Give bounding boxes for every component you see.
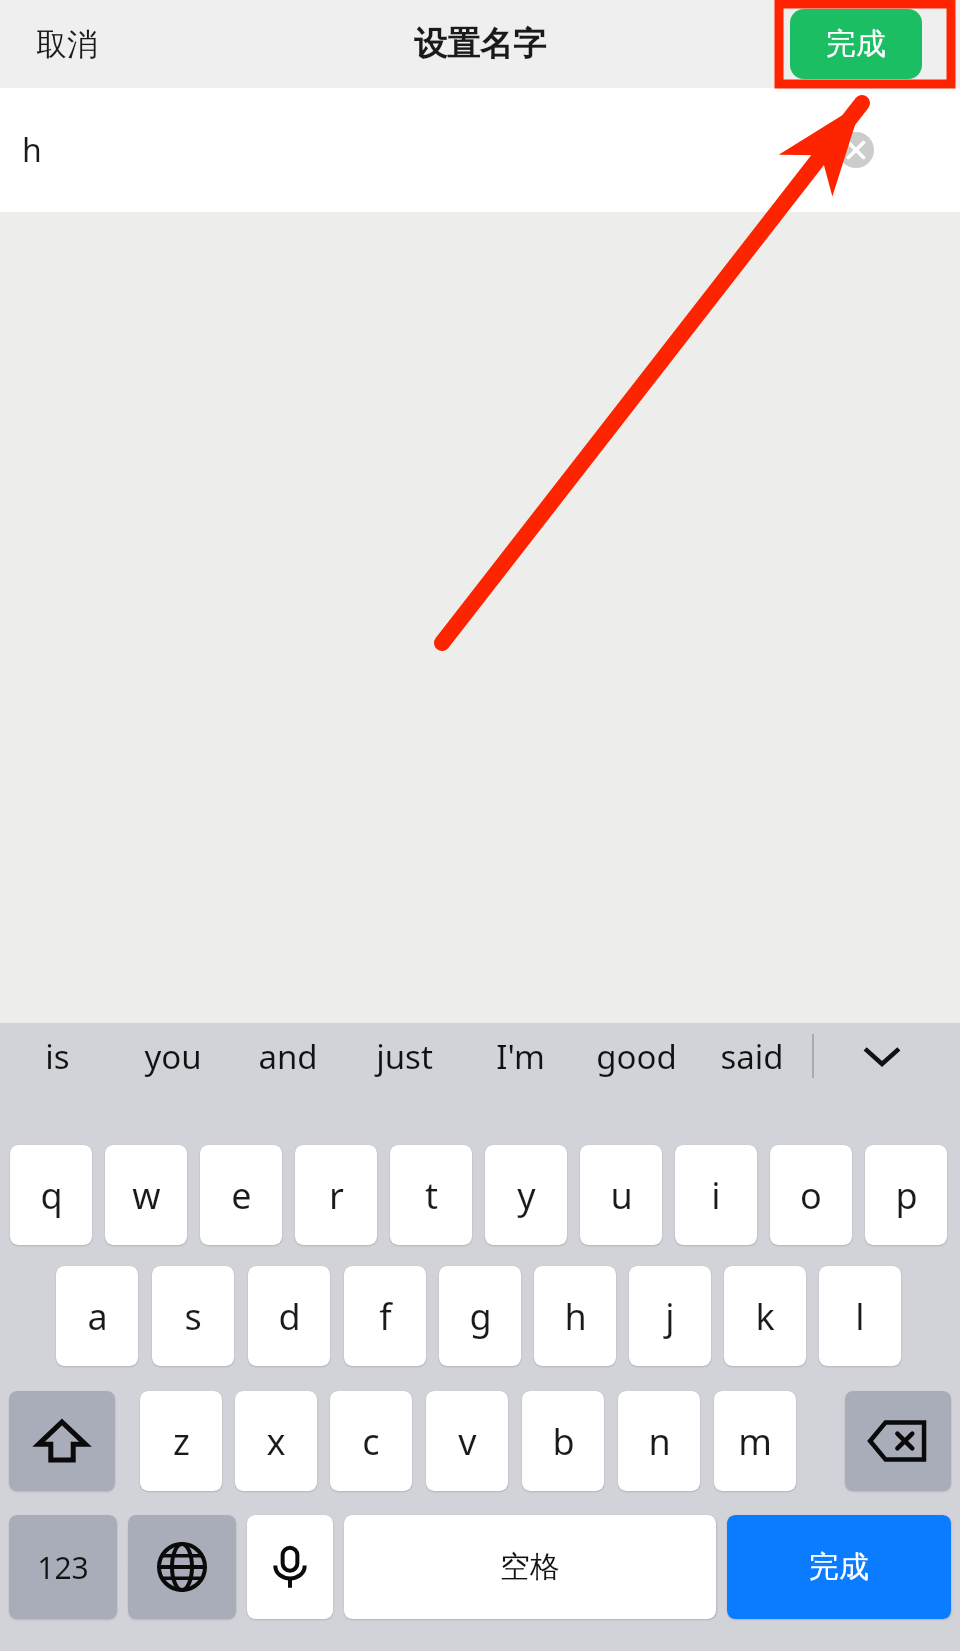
staticText: said bbox=[720, 1034, 784, 1079]
button[interactable]: q bbox=[10, 1145, 92, 1245]
button[interactable]: i bbox=[675, 1145, 757, 1245]
staticText: e bbox=[231, 1171, 252, 1220]
staticText: b bbox=[552, 1417, 575, 1466]
button[interactable]: 123 bbox=[9, 1515, 117, 1619]
staticText: l bbox=[855, 1292, 865, 1341]
button[interactable]: r bbox=[295, 1145, 377, 1245]
staticText: p bbox=[895, 1171, 918, 1220]
staticText: v bbox=[458, 1417, 477, 1466]
button[interactable]: w bbox=[105, 1145, 187, 1245]
staticText: i bbox=[711, 1171, 721, 1220]
staticText: s bbox=[184, 1292, 202, 1341]
staticText: o bbox=[800, 1171, 822, 1220]
staticText: a bbox=[87, 1292, 108, 1341]
button[interactable]: o bbox=[770, 1145, 852, 1245]
button[interactable]: Voice input bbox=[247, 1515, 333, 1619]
button[interactable]: 空格 bbox=[344, 1515, 716, 1619]
button[interactable]: s bbox=[152, 1266, 234, 1366]
button[interactable]: just bbox=[346, 1023, 462, 1089]
staticText: and bbox=[258, 1034, 318, 1079]
button[interactable]: g bbox=[439, 1266, 521, 1366]
button[interactable]: and bbox=[230, 1023, 346, 1089]
staticText: w bbox=[132, 1171, 161, 1220]
button[interactable]: I'm bbox=[462, 1023, 578, 1089]
staticText: h bbox=[564, 1292, 587, 1341]
staticText: c bbox=[362, 1417, 380, 1466]
button[interactable]: h bbox=[534, 1266, 616, 1366]
staticText: q bbox=[40, 1171, 63, 1220]
staticText: 完成 bbox=[809, 1548, 869, 1586]
staticText: is bbox=[45, 1034, 70, 1079]
button[interactable]: is bbox=[0, 1023, 115, 1089]
button[interactable]: f bbox=[344, 1266, 426, 1366]
staticText: k bbox=[755, 1292, 775, 1341]
staticText: m bbox=[738, 1417, 772, 1466]
staticText: j bbox=[665, 1292, 675, 1341]
button[interactable]: you bbox=[115, 1023, 230, 1089]
button[interactable]: e bbox=[200, 1145, 282, 1245]
staticText: 空格 bbox=[500, 1548, 560, 1586]
button[interactable]: a bbox=[56, 1266, 138, 1366]
staticText: 设置名字 bbox=[414, 23, 546, 65]
button[interactable]: Shift bbox=[9, 1391, 115, 1491]
button[interactable]: Clear text bbox=[838, 132, 874, 168]
staticText: y bbox=[517, 1171, 536, 1220]
staticText: good bbox=[596, 1034, 677, 1079]
button[interactable]: j bbox=[629, 1266, 711, 1366]
staticText: just bbox=[376, 1034, 433, 1079]
staticText: f bbox=[379, 1292, 392, 1341]
staticText: r bbox=[329, 1171, 344, 1220]
button[interactable]: c bbox=[330, 1391, 412, 1491]
button[interactable]: x bbox=[235, 1391, 317, 1491]
staticText: t bbox=[425, 1171, 438, 1220]
button[interactable]: l bbox=[819, 1266, 901, 1366]
button[interactable]: k bbox=[724, 1266, 806, 1366]
staticText: 123 bbox=[37, 1547, 89, 1588]
staticText: h bbox=[22, 128, 42, 172]
staticText: d bbox=[278, 1292, 301, 1341]
staticText: z bbox=[173, 1417, 190, 1466]
staticText: 取消 bbox=[36, 25, 98, 64]
button[interactable]: u bbox=[580, 1145, 662, 1245]
button[interactable]: 完成 bbox=[790, 9, 922, 79]
button[interactable]: v bbox=[426, 1391, 508, 1491]
button[interactable]: 取消 bbox=[20, 17, 114, 72]
staticText: I'm bbox=[496, 1034, 545, 1079]
staticText: you bbox=[144, 1034, 202, 1079]
button[interactable]: n bbox=[618, 1391, 700, 1491]
button[interactable]: y bbox=[485, 1145, 567, 1245]
button[interactable]: d bbox=[248, 1266, 330, 1366]
button[interactable]: p bbox=[865, 1145, 947, 1245]
button[interactable]: said bbox=[694, 1023, 810, 1089]
staticText: 完成 bbox=[826, 25, 886, 63]
staticText: x bbox=[266, 1417, 286, 1466]
button[interactable]: Change language bbox=[128, 1515, 236, 1619]
button[interactable]: t bbox=[390, 1145, 472, 1245]
button[interactable]: good bbox=[578, 1023, 694, 1089]
staticText: u bbox=[610, 1171, 633, 1220]
button[interactable]: Backspace bbox=[845, 1391, 951, 1491]
staticText: n bbox=[648, 1417, 671, 1466]
button[interactable]: z bbox=[140, 1391, 222, 1491]
staticText: g bbox=[469, 1292, 492, 1341]
button[interactable]: Hide suggestions bbox=[854, 1028, 910, 1084]
button[interactable]: 完成 bbox=[727, 1515, 951, 1619]
button[interactable]: b bbox=[522, 1391, 604, 1491]
button[interactable]: m bbox=[714, 1391, 796, 1491]
